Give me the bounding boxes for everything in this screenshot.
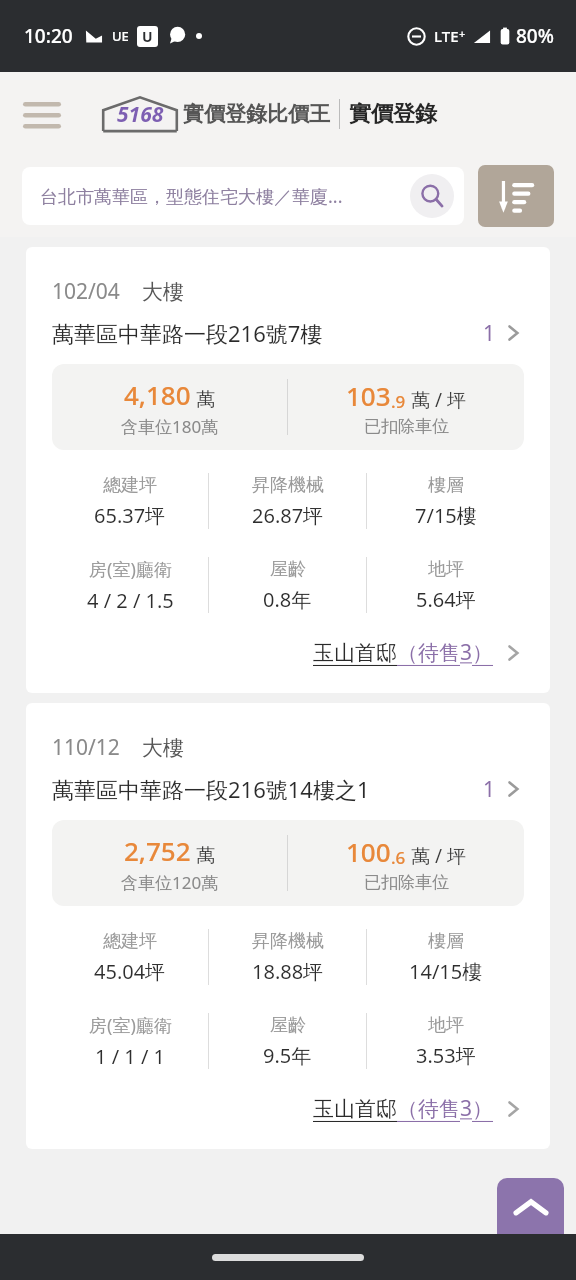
- staticText: 昇降機械: [252, 474, 324, 497]
- staticText: 萬: [196, 844, 215, 868]
- staticText: 玉山首邸（待售3）: [313, 638, 494, 667]
- staticText: 含車位180萬: [121, 415, 219, 438]
- button[interactable]: 台北市萬華區，型態住宅大樓／華廈...: [22, 167, 464, 225]
- staticText: 100: [346, 834, 391, 869]
- button[interactable]: Menu: [14, 86, 70, 142]
- staticText: 18.88坪: [252, 958, 324, 985]
- staticText: 地坪: [428, 1014, 464, 1037]
- staticText: 昇降機械: [252, 930, 324, 953]
- staticText: 總建坪: [103, 930, 157, 953]
- staticText: 台北市萬華區，型態住宅大樓／華廈...: [40, 184, 410, 209]
- staticText: +: [459, 26, 466, 41]
- staticText: 4 / 2 / 1.5: [87, 587, 174, 614]
- staticText: 萬 / 坪: [411, 843, 466, 869]
- staticText: 102/04: [52, 277, 120, 306]
- button[interactable]: 玉山首邸（待售3）: [313, 1094, 524, 1123]
- staticText: 萬華區中華路一段216號7樓: [52, 318, 483, 348]
- staticText: 實價登錄比價王: [183, 101, 330, 127]
- button[interactable]: Sort: [478, 165, 554, 227]
- staticText: 萬: [196, 388, 215, 412]
- staticText: 大樓: [142, 735, 184, 761]
- staticText: 80%: [516, 23, 554, 49]
- staticText: UE: [112, 27, 129, 45]
- staticText: 110/12: [52, 733, 120, 762]
- staticText: 含車位120萬: [121, 871, 219, 894]
- staticText: 2,752: [124, 833, 191, 868]
- staticText: 屋齡: [270, 558, 306, 581]
- button[interactable]: 玉山首邸（待售3）: [313, 638, 524, 667]
- staticText: 玉山首邸（待售3）: [313, 1094, 494, 1123]
- staticText: 5.64坪: [416, 586, 476, 613]
- staticText: .9: [391, 390, 406, 413]
- staticText: 已扣除車位: [364, 416, 449, 437]
- staticText: U: [142, 27, 153, 46]
- staticText: 房(室)廳衛: [89, 557, 172, 582]
- staticText: 萬華區中華路一段216號14樓之1: [52, 774, 483, 804]
- staticText: 65.37坪: [94, 502, 166, 529]
- staticText: 1: [483, 319, 496, 348]
- staticText: 實價登錄: [349, 100, 437, 128]
- staticText: 5168: [117, 100, 164, 129]
- button[interactable]: 102/04: [26, 247, 550, 693]
- staticText: .6: [391, 846, 406, 869]
- staticText: 7/15樓: [415, 502, 477, 529]
- staticText: 樓層: [428, 930, 464, 953]
- staticText: LTE: [434, 26, 459, 46]
- staticText: 1: [483, 775, 496, 804]
- staticText: 4,180: [124, 377, 191, 412]
- button[interactable]: 110/12: [26, 703, 550, 1149]
- staticText: 總建坪: [103, 474, 157, 497]
- button[interactable]: Scroll to top: [497, 1178, 564, 1234]
- staticText: 45.04坪: [94, 958, 166, 985]
- staticText: 9.5年: [263, 1042, 312, 1069]
- staticText: 10:20: [24, 23, 73, 49]
- staticText: 地坪: [428, 558, 464, 581]
- staticText: 14/15樓: [409, 958, 483, 985]
- staticText: 3.53坪: [416, 1042, 476, 1069]
- staticText: 屋齡: [270, 1014, 306, 1037]
- staticText: 大樓: [142, 279, 184, 305]
- staticText: 萬 / 坪: [411, 387, 466, 413]
- staticText: 0.8年: [263, 586, 312, 613]
- staticText: 26.87坪: [252, 502, 324, 529]
- staticText: 1 / 1 / 1: [95, 1043, 165, 1070]
- staticText: 103: [346, 378, 391, 413]
- staticText: 已扣除車位: [364, 872, 449, 893]
- staticText: 樓層: [428, 474, 464, 497]
- staticText: 房(室)廳衛: [89, 1013, 172, 1038]
